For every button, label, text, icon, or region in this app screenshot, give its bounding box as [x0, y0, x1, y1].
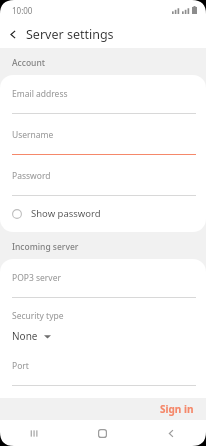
staticText: Sign in — [160, 402, 194, 416]
staticText: Incoming server — [12, 241, 79, 253]
staticText: Account — [12, 57, 46, 69]
button[interactable]: Password — [0, 155, 206, 196]
button[interactable]: Show password — [0, 196, 206, 223]
staticText: POP3 server — [12, 272, 61, 284]
button[interactable]: Security type — [0, 298, 206, 347]
button[interactable]: Port — [0, 347, 206, 386]
button[interactable]: POP3 server — [0, 259, 206, 298]
button[interactable]: Back — [0, 21, 26, 47]
staticText: Email address — [12, 88, 68, 100]
staticText: Security type — [12, 310, 64, 322]
staticText: Username — [12, 129, 54, 141]
staticText: 10:00 — [12, 5, 33, 16]
staticText: Server settings — [26, 26, 114, 43]
staticText: Port — [12, 360, 29, 372]
staticText: Show password — [31, 207, 101, 220]
staticText: None — [12, 329, 38, 343]
button[interactable]: Username — [0, 114, 206, 155]
button[interactable]: Recents — [0, 420, 68, 446]
button[interactable]: Back — [137, 420, 206, 446]
staticText: Password — [12, 170, 51, 182]
button[interactable]: Home — [68, 420, 137, 446]
button[interactable]: Sign in — [148, 399, 206, 419]
button[interactable]: Email address — [0, 75, 206, 114]
